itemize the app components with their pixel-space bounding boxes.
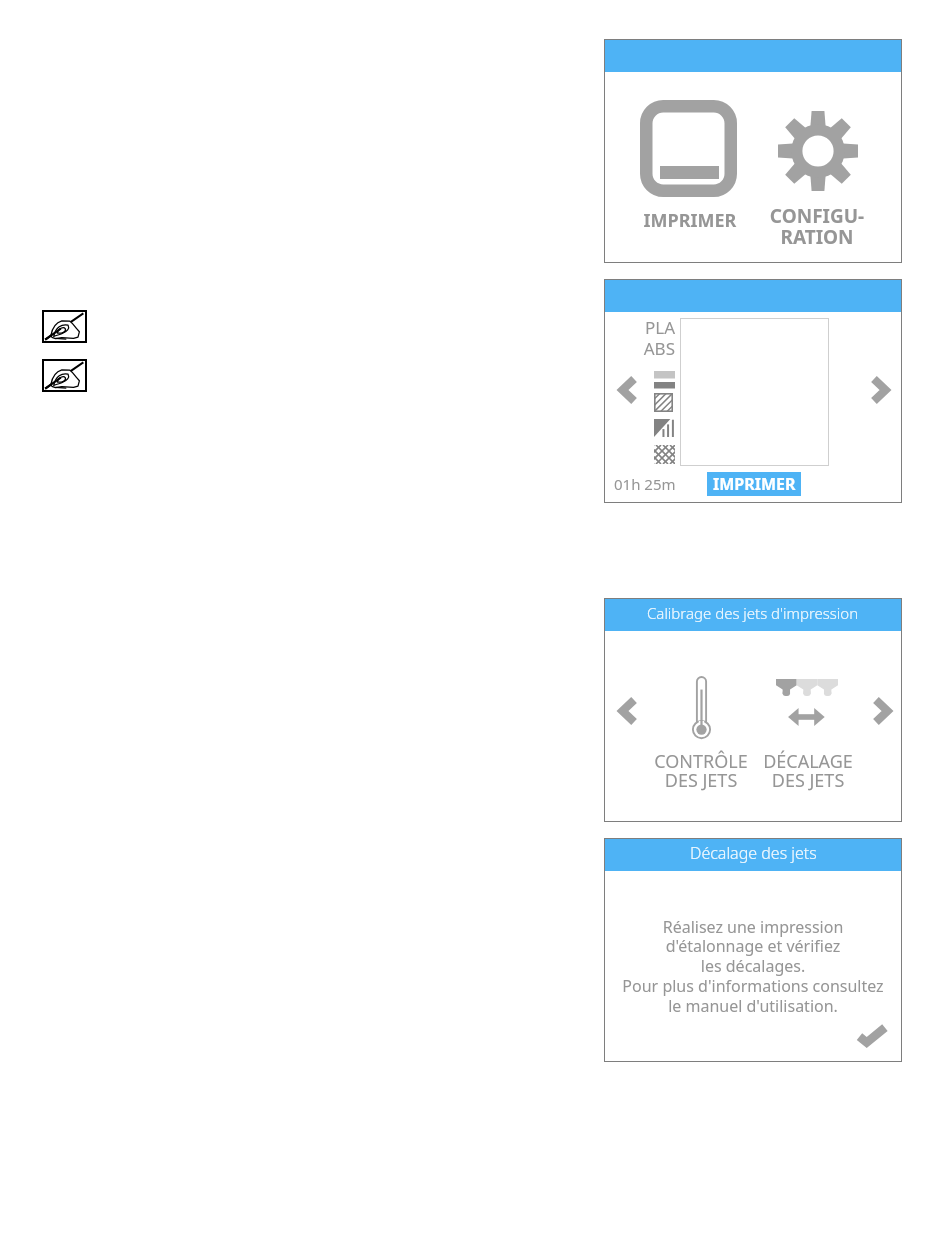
button[interactable]: Note <box>42 310 87 343</box>
staticText: CONFIGU- RATION <box>751 203 883 250</box>
button[interactable]: Suivant <box>863 370 897 410</box>
staticText: IMPRIMER <box>624 208 756 233</box>
staticText: DÉCALAGE DES JETS <box>753 749 863 792</box>
button[interactable]: Précédent <box>611 370 645 410</box>
staticText: Décalage des jets <box>690 842 817 864</box>
button[interactable]: Aperçu <box>680 318 829 466</box>
staticText: CONTRÔLE DES JETS <box>646 749 756 792</box>
staticText: Réalisez une impression d'étalonnage et … <box>604 916 902 1017</box>
button[interactable]: Remplissage <box>654 370 675 465</box>
staticText: 01h 25m <box>614 474 676 494</box>
staticText: ABS <box>630 337 675 359</box>
staticText: Calibrage des jets d'impression <box>647 603 859 623</box>
button[interactable]: Note <box>42 359 87 392</box>
button[interactable]: IMPRIMER <box>624 93 756 223</box>
button[interactable]: Précédent <box>611 691 645 731</box>
button[interactable]: Suivant <box>865 691 899 731</box>
staticText: PLA <box>630 316 675 338</box>
button[interactable]: PLA <box>630 316 675 338</box>
button[interactable]: CONTRÔLE DES JETS <box>646 671 756 793</box>
button[interactable]: IMPRIMER <box>707 472 801 496</box>
button[interactable]: Valider <box>849 1016 893 1054</box>
staticText: IMPRIMER <box>713 473 796 495</box>
button[interactable]: DÉCALAGE DES JETS <box>753 671 863 793</box>
button[interactable]: CONFIGU- RATION <box>751 93 883 243</box>
button[interactable]: ABS <box>630 337 675 359</box>
